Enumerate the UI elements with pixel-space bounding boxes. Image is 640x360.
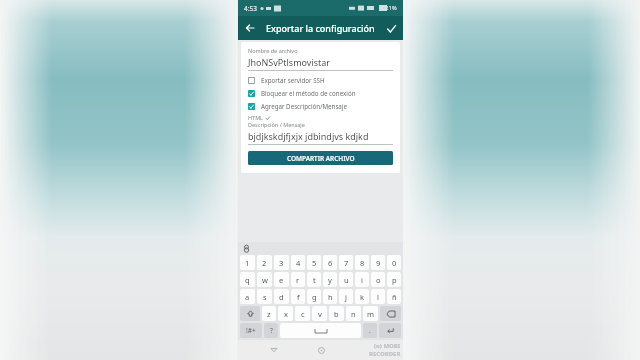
- button[interactable]: Confirm: [379, 16, 403, 40]
- staticText: Bloquear el método de conexión: [261, 89, 356, 97]
- staticText: !#+: [246, 326, 256, 335]
- button[interactable]: u: [339, 272, 353, 287]
- button[interactable]: 1: [240, 255, 255, 270]
- button[interactable]: Back: [264, 340, 284, 360]
- staticText: e: [279, 275, 284, 285]
- staticText: u: [344, 275, 349, 285]
- staticText: k: [360, 292, 365, 302]
- staticText: b: [334, 309, 339, 319]
- staticText: .: [369, 326, 371, 335]
- staticText: Exportar servidor SSH: [261, 76, 325, 84]
- button[interactable]: w: [257, 272, 272, 287]
- staticText: p: [392, 275, 397, 285]
- staticText: h: [328, 292, 333, 302]
- button[interactable]: 3: [274, 255, 289, 270]
- button[interactable]: j: [339, 289, 353, 304]
- button[interactable]: t: [307, 272, 321, 287]
- button[interactable]: v: [312, 306, 327, 321]
- staticText: Agregar Descripción/Mensaje: [261, 102, 347, 110]
- button[interactable]: d: [274, 289, 289, 304]
- button[interactable]: m: [363, 306, 378, 321]
- button[interactable]: 0: [387, 255, 401, 270]
- button[interactable]: g: [307, 289, 321, 304]
- button[interactable]: i: [355, 272, 369, 287]
- button[interactable]: k: [355, 289, 369, 304]
- staticText: 8: [360, 258, 365, 268]
- button[interactable]: q: [240, 272, 255, 287]
- button[interactable]: 6: [323, 255, 337, 270]
- staticText: 1: [245, 258, 250, 268]
- staticText: 6: [328, 258, 333, 268]
- button[interactable]: n: [346, 306, 361, 321]
- button[interactable]: !#+: [240, 323, 262, 338]
- staticText: i: [361, 275, 363, 285]
- staticText: n: [351, 309, 356, 319]
- button[interactable]: 5: [307, 255, 321, 270]
- button[interactable]: Bloquear el método de conexión: [248, 89, 393, 97]
- button[interactable]: h: [323, 289, 337, 304]
- button[interactable]: ?: [264, 323, 278, 338]
- button[interactable]: o: [371, 272, 385, 287]
- staticText: Nombre de archivo: [248, 47, 298, 54]
- staticText: HTML: [248, 114, 264, 121]
- button[interactable]: Home: [311, 340, 331, 360]
- staticText: 4:53: [244, 4, 257, 13]
- staticText: l: [377, 292, 379, 302]
- staticText: RECORDER: [369, 350, 401, 358]
- staticText: 7: [344, 258, 349, 268]
- button[interactable]: Delete: [380, 306, 401, 321]
- button[interactable]: a: [240, 289, 255, 304]
- button[interactable]: Space: [280, 323, 361, 338]
- staticText: 21%: [385, 4, 397, 12]
- staticText: c: [301, 309, 305, 319]
- button[interactable]: Keyboard settings: [242, 244, 251, 253]
- staticText: z: [267, 309, 271, 319]
- staticText: Descripción / Mensaje: [248, 121, 305, 128]
- button[interactable]: .: [363, 323, 377, 338]
- staticText: 5: [312, 258, 317, 268]
- staticText: q: [245, 275, 250, 285]
- button[interactable]: ñ: [387, 289, 401, 304]
- staticText: bjdjkskdjfjxjx jdbindjvs kdjkd: [248, 130, 369, 142]
- button[interactable]: r: [291, 272, 305, 287]
- staticText: (o) MOBI: [374, 342, 401, 350]
- staticText: COMPARTIR ARCHIVO: [287, 154, 355, 163]
- staticText: v: [318, 309, 322, 319]
- staticText: x: [284, 309, 288, 319]
- staticText: t: [313, 275, 316, 285]
- staticText: Exportar la configuración: [266, 22, 375, 34]
- button[interactable]: 4: [291, 255, 305, 270]
- button[interactable]: s: [257, 289, 272, 304]
- staticText: 0: [392, 258, 397, 268]
- button[interactable]: c: [295, 306, 310, 321]
- button[interactable]: b: [329, 306, 344, 321]
- staticText: g: [312, 292, 317, 302]
- button[interactable]: x: [278, 306, 293, 321]
- staticText: 9: [376, 258, 381, 268]
- button[interactable]: 9: [371, 255, 385, 270]
- staticText: 4: [296, 258, 301, 268]
- button[interactable]: Shift: [240, 306, 260, 321]
- button[interactable]: 8: [355, 255, 369, 270]
- button[interactable]: Agregar Descripción/Mensaje: [248, 102, 393, 110]
- button[interactable]: z: [262, 306, 276, 321]
- button[interactable]: Enter: [379, 323, 401, 338]
- button[interactable]: Back: [238, 16, 262, 40]
- staticText: y: [328, 275, 332, 285]
- button[interactable]: y: [323, 272, 337, 287]
- staticText: j: [345, 292, 347, 302]
- button[interactable]: f: [291, 289, 305, 304]
- button[interactable]: COMPARTIR ARCHIVO: [248, 151, 393, 165]
- button[interactable]: 7: [339, 255, 353, 270]
- button[interactable]: Recents: [357, 340, 377, 360]
- button[interactable]: 2: [257, 255, 272, 270]
- button[interactable]: e: [274, 272, 289, 287]
- staticText: w: [262, 275, 268, 285]
- button[interactable]: p: [387, 272, 401, 287]
- staticText: d: [279, 292, 284, 302]
- button[interactable]: Exportar servidor SSH: [248, 76, 393, 84]
- button[interactable]: l: [371, 289, 385, 304]
- staticText: m: [367, 309, 375, 319]
- staticText: JhoNSvPtlsmovistar: [248, 56, 331, 68]
- staticText: r: [296, 275, 300, 285]
